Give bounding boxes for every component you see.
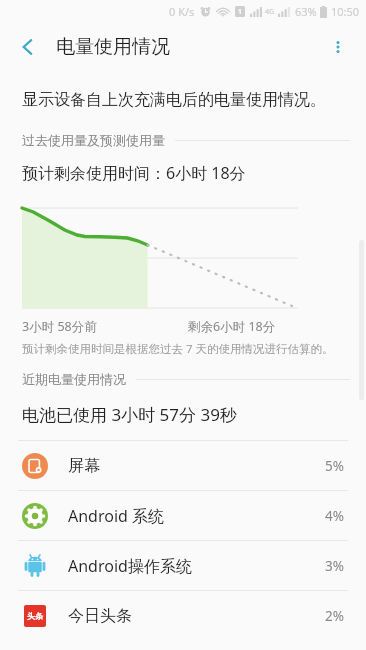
button[interactable]: Android 系统 — [0, 491, 366, 540]
staticText: 近期电量使用情况 — [22, 371, 126, 387]
staticText: 屏幕 — [68, 456, 325, 476]
staticText: 0 K/s — [169, 4, 195, 19]
staticText: 2% — [325, 607, 344, 625]
staticText: Android操作系统 — [68, 555, 325, 577]
button[interactable]: More options — [318, 27, 358, 67]
button[interactable]: Back — [8, 27, 48, 67]
staticText: 今日头条 — [68, 606, 325, 626]
button[interactable]: Android操作系统 — [0, 541, 366, 590]
staticText: 4% — [325, 507, 344, 525]
staticText: 10:50 — [331, 4, 360, 19]
staticText: 4G — [265, 7, 275, 17]
staticText: 电量使用情况 — [56, 35, 170, 59]
button[interactable]: 屏幕 — [0, 441, 366, 490]
staticText: 电池已使用 3小时 57分 39秒 — [22, 403, 237, 426]
staticText: 预计剩余使用时间：6小时 18分 — [22, 162, 246, 184]
staticText: 3% — [325, 557, 344, 575]
staticText: 3小时 58分前 — [22, 318, 97, 335]
staticText: 显示设备自上次充满电后的电量使用情况。 — [22, 90, 326, 110]
staticText: 预计剩余使用时间是根据您过去 7 天的使用情况进行估算的。 — [22, 341, 334, 357]
staticText: Android 系统 — [68, 505, 325, 527]
staticText: 1 — [238, 7, 243, 17]
staticText: 63% — [295, 4, 317, 19]
staticText: 头条 — [27, 611, 43, 621]
staticText: 过去使用量及预测使用量 — [22, 132, 165, 148]
staticText: 剩余6小时 18分 — [188, 318, 276, 335]
button[interactable]: 头条 — [0, 591, 366, 640]
staticText: 5% — [325, 457, 344, 475]
